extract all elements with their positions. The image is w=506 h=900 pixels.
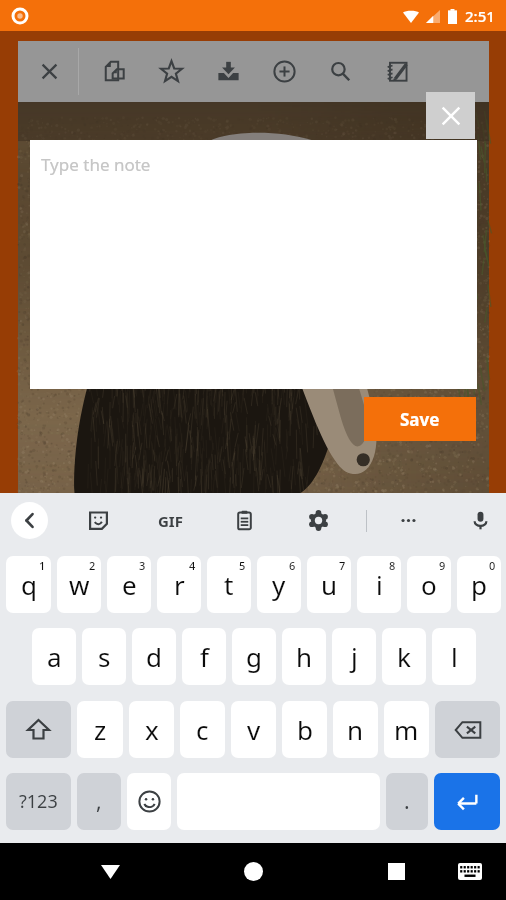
button[interactable]: u: [307, 556, 351, 613]
staticText: a: [47, 639, 62, 674]
staticText: 8: [389, 558, 396, 573]
button[interactable]: GIF: [153, 502, 187, 539]
button[interactable]: Stickers: [81, 502, 115, 539]
staticText: t: [224, 567, 234, 602]
staticText: 7: [339, 558, 346, 573]
button[interactable]: Back: [88, 843, 132, 900]
button[interactable]: y: [257, 556, 301, 613]
button[interactable]: h: [282, 628, 326, 685]
staticText: 3: [139, 558, 146, 573]
staticText: p: [471, 567, 487, 602]
button[interactable]: k: [382, 628, 426, 685]
button[interactable]: f: [182, 628, 226, 685]
staticText: GIF: [158, 511, 183, 531]
button[interactable]: d: [132, 628, 176, 685]
button[interactable]: m: [384, 701, 429, 758]
button[interactable]: c: [180, 701, 225, 758]
button[interactable]: Favorite: [153, 41, 190, 102]
button[interactable]: l: [432, 628, 476, 685]
staticText: n: [347, 712, 364, 747]
staticText: h: [296, 639, 313, 674]
button[interactable]: More: [391, 502, 425, 539]
staticText: 6: [289, 558, 296, 573]
button[interactable]: p: [457, 556, 501, 613]
staticText: e: [122, 567, 137, 602]
staticText: ?123: [19, 789, 58, 814]
button[interactable]: Back: [11, 502, 48, 539]
button[interactable]: Enter: [434, 773, 500, 830]
button[interactable]: t: [207, 556, 251, 613]
staticText: k: [397, 639, 411, 674]
button[interactable]: r: [157, 556, 201, 613]
button[interactable]: a: [32, 628, 76, 685]
button[interactable]: z: [77, 701, 123, 758]
staticText: q: [21, 567, 37, 602]
button[interactable]: Recents: [374, 843, 418, 900]
staticText: 9: [439, 558, 446, 573]
button[interactable]: j: [332, 628, 376, 685]
staticText: v: [247, 712, 261, 747]
staticText: f: [200, 639, 209, 674]
button[interactable]: Close note: [426, 92, 475, 139]
button[interactable]: e: [107, 556, 151, 613]
button[interactable]: Settings: [301, 502, 335, 539]
button[interactable]: Clipboard: [227, 502, 261, 539]
staticText: 0: [489, 558, 496, 573]
button[interactable]: v: [231, 701, 276, 758]
staticText: 5: [239, 558, 246, 573]
staticText: 4: [189, 558, 196, 573]
staticText: Type the note: [41, 153, 151, 176]
button[interactable]: .: [386, 773, 428, 830]
button[interactable]: Add: [266, 41, 303, 102]
button[interactable]: x: [129, 701, 174, 758]
button[interactable]: w: [57, 556, 101, 613]
staticText: j: [351, 639, 358, 674]
button[interactable]: Close: [31, 41, 68, 102]
staticText: b: [297, 712, 313, 747]
button[interactable]: n: [333, 701, 378, 758]
button[interactable]: Keyboard: [450, 843, 490, 900]
button[interactable]: ?123: [6, 773, 71, 830]
staticText: 2:51: [465, 6, 495, 26]
staticText: Save: [400, 408, 440, 431]
button[interactable]: Shift: [6, 701, 71, 758]
staticText: u: [321, 567, 338, 602]
button[interactable]: Edit note: [380, 41, 417, 102]
button[interactable]: Backspace: [435, 701, 500, 758]
button[interactable]: o: [407, 556, 451, 613]
staticText: m: [394, 712, 419, 747]
button[interactable]: Download: [210, 41, 247, 102]
button[interactable]: Emoji: [127, 773, 171, 830]
button[interactable]: s: [82, 628, 126, 685]
staticText: y: [272, 567, 286, 602]
staticText: l: [451, 639, 458, 674]
staticText: g: [246, 639, 262, 674]
button[interactable]: Search: [322, 41, 359, 102]
staticText: 1: [39, 558, 46, 573]
staticText: c: [196, 712, 209, 747]
staticText: w: [69, 567, 90, 602]
button[interactable]: Copy: [96, 41, 133, 102]
staticText: 2: [89, 558, 96, 573]
button[interactable]: i: [357, 556, 401, 613]
button[interactable]: Voice input: [463, 502, 497, 539]
staticText: x: [145, 712, 159, 747]
staticText: d: [146, 639, 162, 674]
button[interactable]: q: [6, 556, 51, 613]
button[interactable]: Save: [364, 397, 476, 441]
staticText: r: [174, 567, 185, 602]
staticText: z: [94, 712, 107, 747]
staticText: ,: [96, 787, 102, 816]
staticText: o: [421, 567, 437, 602]
staticText: s: [98, 639, 111, 674]
button[interactable]: g: [232, 628, 276, 685]
button[interactable]: ,: [77, 773, 121, 830]
staticText: .: [404, 787, 410, 816]
button[interactable]: Home: [231, 843, 275, 900]
staticText: i: [376, 567, 383, 602]
button[interactable]: b: [282, 701, 327, 758]
